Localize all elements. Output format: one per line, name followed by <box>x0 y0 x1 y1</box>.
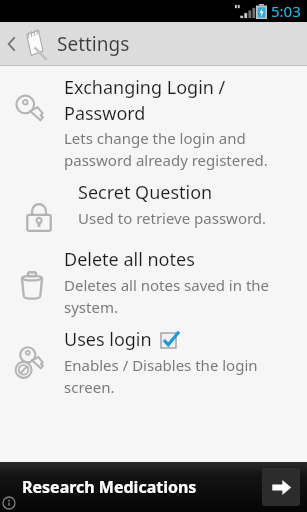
staticText: Delete all notes <box>64 247 195 272</box>
button[interactable]: Ad information <box>2 496 16 510</box>
staticText: Settings <box>57 31 130 57</box>
staticText: Enables / Disables the login screen. <box>64 355 258 398</box>
button[interactable]: Open advertisement <box>262 468 300 506</box>
staticText: Exchanging Login / Password <box>64 75 226 125</box>
staticText: Lets change the login and password alrea… <box>64 128 268 171</box>
staticText: Uses login <box>64 327 152 352</box>
button[interactable]: Secret Question <box>0 173 307 240</box>
staticText: Research Medications <box>22 476 197 498</box>
button[interactable]: Settings <box>0 22 307 66</box>
staticText: Deletes all notes saved in the system. <box>64 275 270 318</box>
staticText: Secret Question <box>78 180 213 205</box>
button[interactable]: Uses login <box>0 320 307 400</box>
staticText: 5:03 <box>271 1 301 21</box>
button[interactable]: Exchanging Login / Password <box>0 66 307 173</box>
button[interactable]: Delete all notes <box>0 240 307 320</box>
staticText: Used to retrieve password. <box>78 208 267 228</box>
button[interactable]: Research Medications <box>0 462 307 512</box>
